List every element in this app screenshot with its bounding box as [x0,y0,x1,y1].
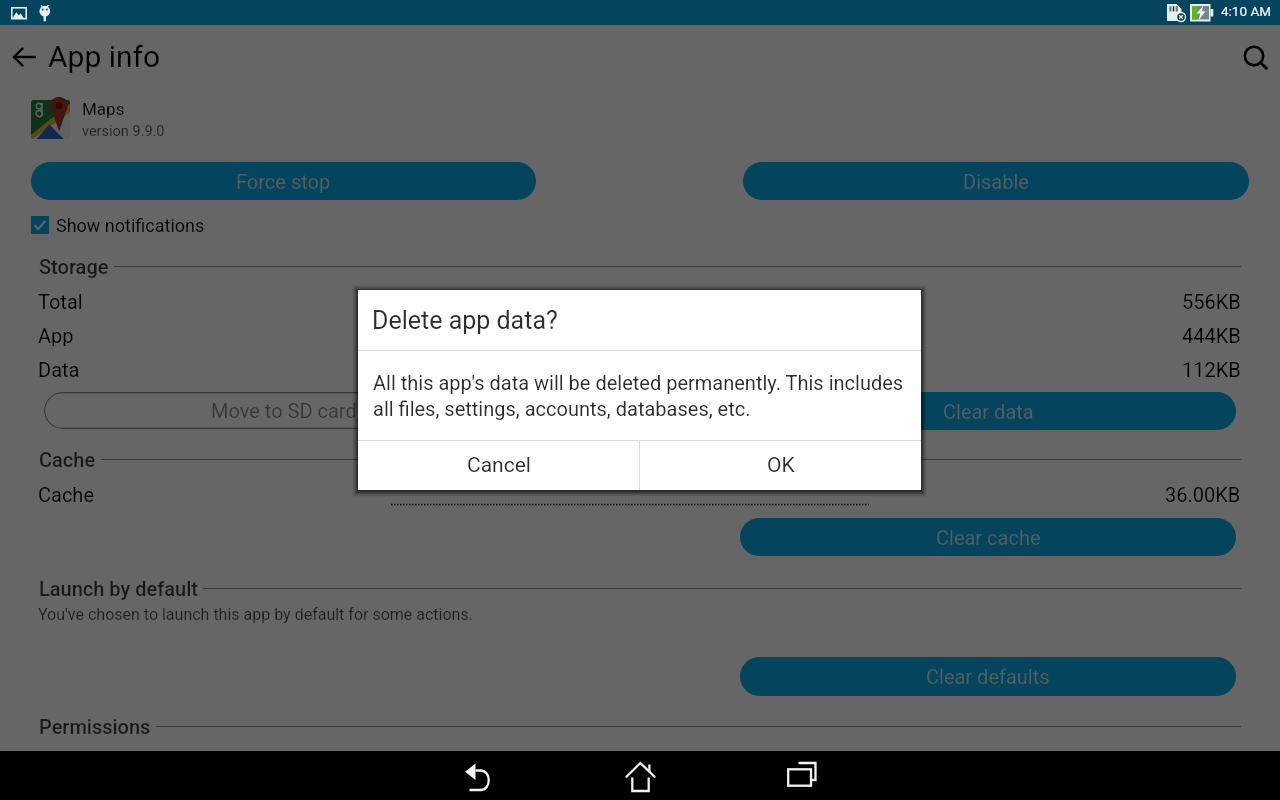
staticText: Show notifications [56,215,205,236]
button[interactable]: Navigate up [3,35,47,79]
staticText: version 9.9.0 [82,123,165,140]
button[interactable]: Show notifications [31,209,205,241]
staticText: Total [38,290,83,312]
staticText: Clear defaults [926,665,1050,688]
button[interactable]: OK [640,441,921,490]
staticText: Delete app data? [372,306,558,335]
staticText: Cache [39,448,96,471]
staticText: Move to SD card [211,399,357,422]
button[interactable]: Clear defaults [740,657,1236,696]
staticText: 556KB [1182,290,1241,312]
button[interactable]: Clear data [740,392,1236,430]
button[interactable]: Home [623,755,663,795]
staticText: 444KB [1182,324,1241,346]
staticText: Launch by default [39,577,198,600]
staticText: Clear data [943,400,1034,423]
button[interactable]: Back [460,760,500,800]
staticText: 112KB [1182,358,1241,380]
staticText: Permissions [39,715,151,738]
staticText: App info [48,39,161,74]
staticText: Storage [39,255,109,278]
staticText: Clear cache [936,526,1041,549]
staticText: All this app's data will be deleted perm… [373,371,913,421]
staticText: 4:10 AM [1221,3,1271,19]
staticText: Disable [963,170,1029,193]
staticText: Cache [38,483,94,505]
staticText: Cancel [467,453,531,478]
button[interactable]: Force stop [31,162,536,200]
staticText: App [38,324,74,346]
button[interactable]: Recent apps [787,751,827,791]
staticText: Maps [82,99,125,119]
button[interactable]: Move to SD card [44,392,524,429]
staticText: Data [38,358,80,380]
button[interactable]: Cancel [358,441,639,490]
staticText: You've chosen to launch this app by defa… [38,605,473,624]
button[interactable]: Search [1234,36,1276,78]
button[interactable]: Disable [743,162,1249,200]
staticText: Force stop [236,170,331,193]
staticText: OK [767,453,795,478]
staticText: 36.00KB [1165,483,1241,505]
button[interactable]: Clear cache [740,518,1236,556]
